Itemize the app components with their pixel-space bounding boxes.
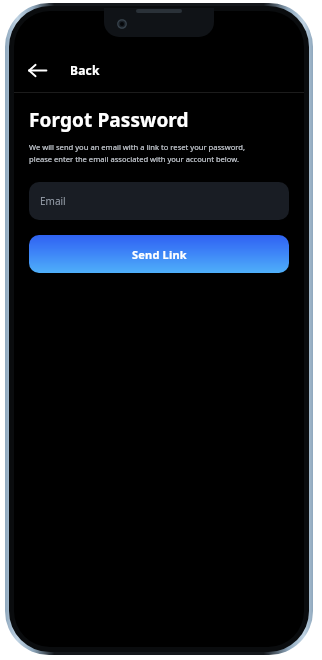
button[interactable]: Back (70, 62, 100, 78)
staticText: Send Link (132, 247, 187, 262)
staticText: We will send you an email with a link to… (29, 142, 245, 165)
button[interactable]: Send Link (29, 235, 289, 273)
button[interactable]: Email (29, 182, 289, 220)
staticText: Back (70, 62, 100, 78)
button[interactable]: Back (20, 53, 54, 87)
staticText: Email (40, 194, 66, 208)
staticText: Forgot Password (29, 107, 189, 133)
